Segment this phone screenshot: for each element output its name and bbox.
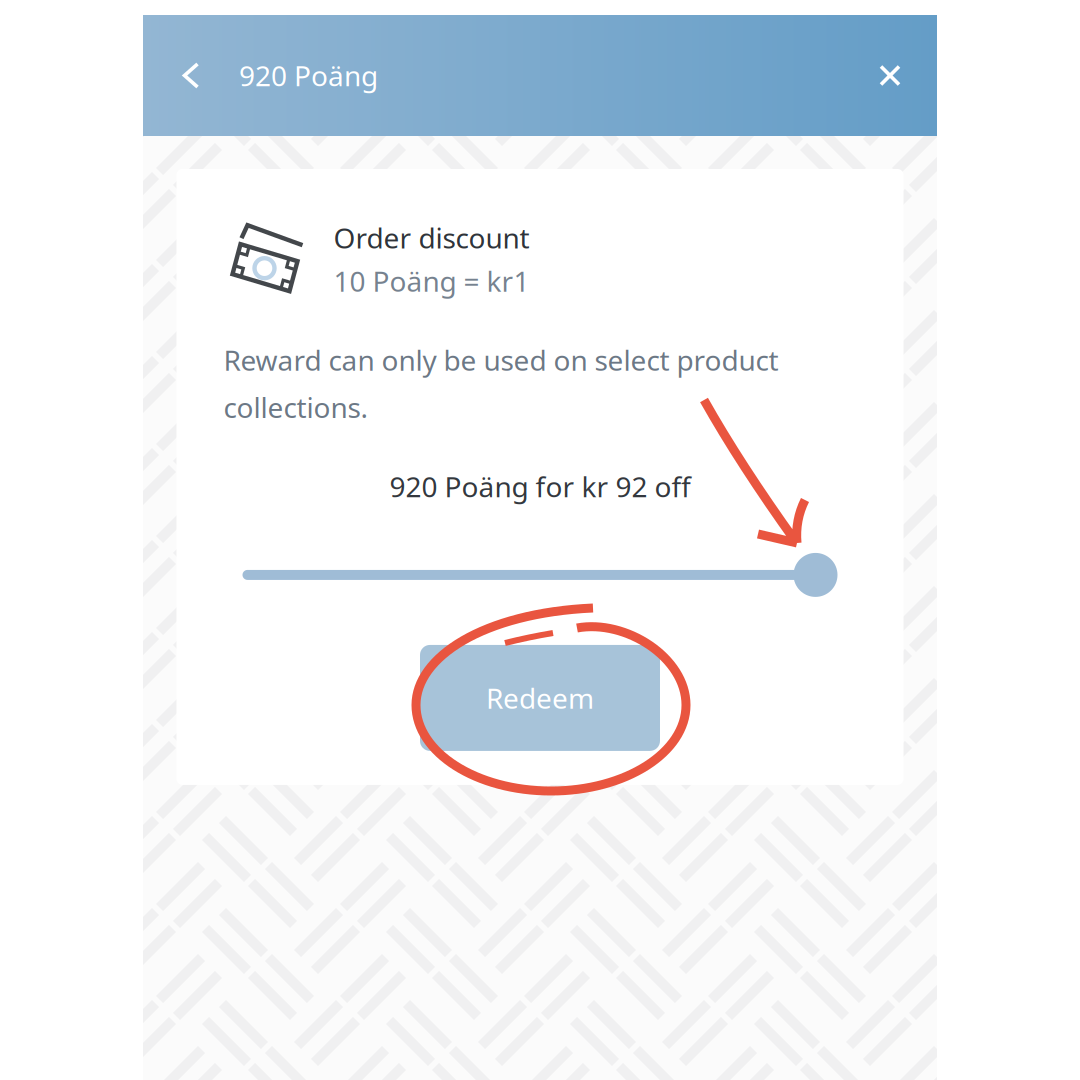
staticText: Redeem — [486, 679, 594, 716]
button[interactable]: 920 Poäng — [239, 15, 378, 136]
button[interactable]: Redeem — [420, 645, 660, 751]
button[interactable]: Back — [143, 15, 239, 136]
staticText: 920 Poäng — [239, 57, 378, 94]
staticText: 920 Poäng for kr 92 off — [389, 468, 690, 505]
staticText: Reward can only be used on select produc… — [223, 341, 778, 426]
staticText: 10 Poäng = kr1 — [333, 262, 529, 299]
staticText: Order discount — [333, 219, 529, 256]
button[interactable]: Close — [843, 15, 937, 136]
